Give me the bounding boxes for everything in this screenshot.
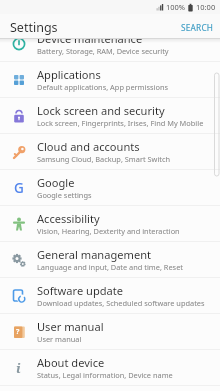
button[interactable]: Software update	[0, 278, 220, 314]
staticText: Software update	[37, 283, 124, 298]
staticText: Samsung Cloud, Backup, Smart Switch	[37, 154, 171, 164]
staticText: About device	[37, 355, 105, 370]
staticText: General management	[37, 247, 152, 262]
staticText: 10:00	[196, 2, 216, 12]
staticText: Google	[37, 175, 75, 190]
staticText: G	[14, 179, 24, 197]
staticText: User manual	[37, 319, 104, 334]
staticText: User manual	[37, 334, 82, 344]
staticText: Battery, Storage, RAM, Device security	[37, 46, 169, 56]
staticText: Download updates, Scheduled software upd…	[37, 298, 205, 308]
staticText: Default applications, App permissions	[37, 82, 169, 92]
staticText: Settings	[10, 19, 58, 36]
button[interactable]: i	[0, 350, 220, 386]
staticText: Applications	[37, 67, 101, 82]
staticText: SEARCH	[181, 22, 214, 33]
button[interactable]: Applications	[0, 62, 220, 98]
button[interactable]: ?	[0, 314, 220, 350]
staticText: Vision, Hearing, Dexterity and interacti…	[37, 226, 180, 236]
staticText: Lock screen, Fingerprints, Irises, Find …	[37, 118, 204, 128]
staticText: Device maintenance	[37, 31, 143, 46]
button[interactable]: G	[0, 170, 220, 206]
staticText: Google settings	[37, 190, 92, 200]
button[interactable]: SEARCH	[175, 14, 220, 38]
staticText: Lock screen and security	[37, 103, 165, 118]
staticText: Cloud and accounts	[37, 139, 140, 154]
button[interactable]: Lock screen and security	[0, 98, 220, 134]
staticText: Status, Legal information, Device name	[37, 370, 173, 380]
staticText: i	[16, 359, 21, 377]
staticText: ?	[16, 327, 20, 337]
staticText: 100%	[166, 2, 186, 12]
button[interactable]: Accessibility	[0, 206, 220, 242]
button[interactable]: Cloud and accounts	[0, 134, 220, 170]
staticText: Accessibility	[37, 211, 100, 226]
staticText: Language and input, Date and time, Reset	[37, 262, 183, 272]
button[interactable]: Device maintenance	[0, 26, 220, 62]
button[interactable]: General management	[0, 242, 220, 278]
